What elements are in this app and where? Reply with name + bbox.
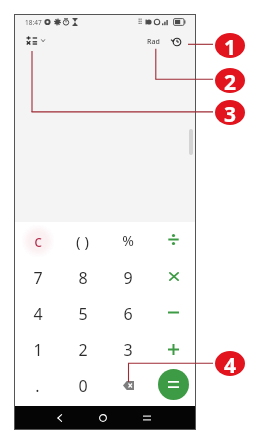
button[interactable]: Callout 2 — [215, 68, 245, 93]
button[interactable]: Recent apps — [136, 406, 158, 429]
button[interactable]: 8 — [60, 259, 105, 296]
other: Equals — [158, 369, 189, 400]
button[interactable]: Callout 4 — [215, 351, 245, 376]
button[interactable]: 2 — [60, 332, 105, 368]
button[interactable]: Multiply — [150, 259, 195, 296]
button[interactable]: ( ) — [60, 222, 105, 259]
staticText: 5 — [78, 303, 88, 325]
button[interactable]: 4 — [15, 296, 60, 332]
button[interactable]: Home — [92, 406, 114, 429]
button[interactable]: 6 — [105, 296, 150, 332]
staticText: % — [122, 231, 134, 250]
staticText: 3 — [224, 100, 237, 125]
staticText: 7 — [33, 267, 43, 289]
button[interactable]: Backspace — [105, 368, 150, 404]
button[interactable]: % — [105, 222, 150, 259]
button[interactable]: 0 — [60, 368, 105, 404]
staticText: 2 — [224, 68, 237, 93]
button[interactable]: 7 — [15, 259, 60, 296]
staticText: 0 — [78, 375, 88, 397]
button[interactable]: Callout 1 — [215, 33, 245, 58]
button[interactable]: Equals — [150, 368, 195, 404]
staticText: 18:47 — [25, 18, 42, 27]
button[interactable]: Add — [150, 332, 195, 368]
staticText: 8 — [78, 267, 88, 289]
staticText: 4 — [33, 303, 43, 325]
button[interactable]: 1 — [15, 332, 60, 368]
other: Divide — [168, 234, 179, 245]
other: Subtract — [168, 311, 179, 314]
other: Backspace — [123, 381, 134, 390]
button[interactable]: Callout 3 — [215, 100, 245, 125]
other: Multiply — [169, 272, 179, 281]
button[interactable]: 3 — [105, 332, 150, 368]
staticText: 4 — [224, 351, 237, 376]
staticText: 2 — [78, 339, 88, 361]
staticText: ( ) — [76, 231, 89, 251]
button[interactable]: Angle unit — [144, 32, 162, 52]
button[interactable]: c — [15, 222, 60, 259]
staticText: 1 — [224, 33, 237, 58]
staticText: 3 — [123, 339, 133, 361]
button[interactable]: Subtract — [150, 296, 195, 332]
staticText: Rad — [147, 37, 160, 47]
staticText: c — [34, 230, 42, 252]
button[interactable]: . — [15, 368, 60, 404]
button[interactable]: Back — [48, 406, 70, 429]
staticText: . — [35, 375, 40, 397]
staticText: 1 — [33, 339, 43, 361]
button[interactable]: 5 — [60, 296, 105, 332]
button[interactable]: 9 — [105, 259, 150, 296]
other: Add — [168, 344, 179, 355]
button[interactable]: Divide — [150, 222, 195, 259]
staticText: 6 — [123, 303, 133, 325]
button[interactable]: Calculator mode — [23, 33, 47, 51]
button[interactable]: History — [167, 32, 187, 52]
staticText: 9 — [123, 267, 133, 289]
